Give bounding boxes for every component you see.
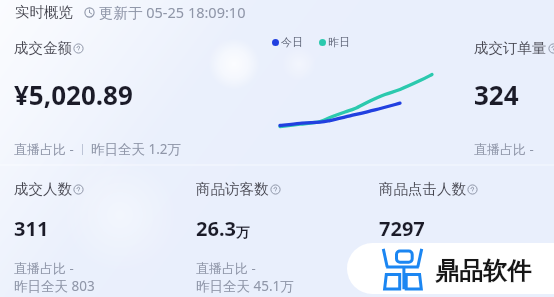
- button[interactable]: 成交订单量: [460, 20, 554, 164]
- other: 鼎品软件 logo: [382, 248, 424, 290]
- staticText: 成交金额: [14, 39, 72, 57]
- staticText: 直播占比 -: [196, 259, 256, 277]
- staticText: 成交订单量: [474, 39, 547, 57]
- staticText: 直播占比 -: [474, 140, 534, 158]
- staticText: 直播占比 -: [14, 140, 74, 158]
- staticText: 今日: [281, 35, 303, 49]
- staticText: 商品访客数: [196, 180, 269, 198]
- button[interactable]: 成交人数: [0, 167, 181, 297]
- button[interactable]: 成交金额: [0, 20, 456, 164]
- staticText: 昨日全天 45.1万: [196, 277, 294, 295]
- staticText: 直播占比 -: [14, 259, 74, 277]
- staticText: 实时概览: [15, 3, 73, 21]
- staticText: 昨日全天: [379, 277, 437, 295]
- staticText: 万: [236, 224, 250, 241]
- staticText: 26.3: [196, 215, 236, 242]
- staticText: 鼎品软件: [435, 256, 531, 286]
- staticText: ¥5,020.89: [14, 77, 133, 112]
- staticText: 7297: [379, 215, 425, 242]
- staticText: 昨日全天 1.2万: [91, 140, 182, 158]
- button[interactable]: 商品访客数: [182, 167, 364, 297]
- button[interactable]: 商品点击人数: [365, 167, 554, 297]
- button[interactable]: 实时概览: [0, 0, 554, 24]
- staticText: 昨日: [328, 35, 350, 49]
- staticText: 311: [14, 215, 49, 242]
- staticText: 商品点击人数: [379, 180, 466, 198]
- staticText: 更新于 05-25 18:09:10: [99, 2, 246, 22]
- button[interactable]: 鼎品软件 logo: [347, 243, 554, 294]
- staticText: 324: [474, 77, 519, 112]
- other: Updated time: [84, 7, 95, 18]
- staticText: 成交人数: [14, 180, 72, 198]
- staticText: 昨日全天 803: [14, 277, 95, 295]
- staticText: 直播占比 -: [379, 259, 439, 277]
